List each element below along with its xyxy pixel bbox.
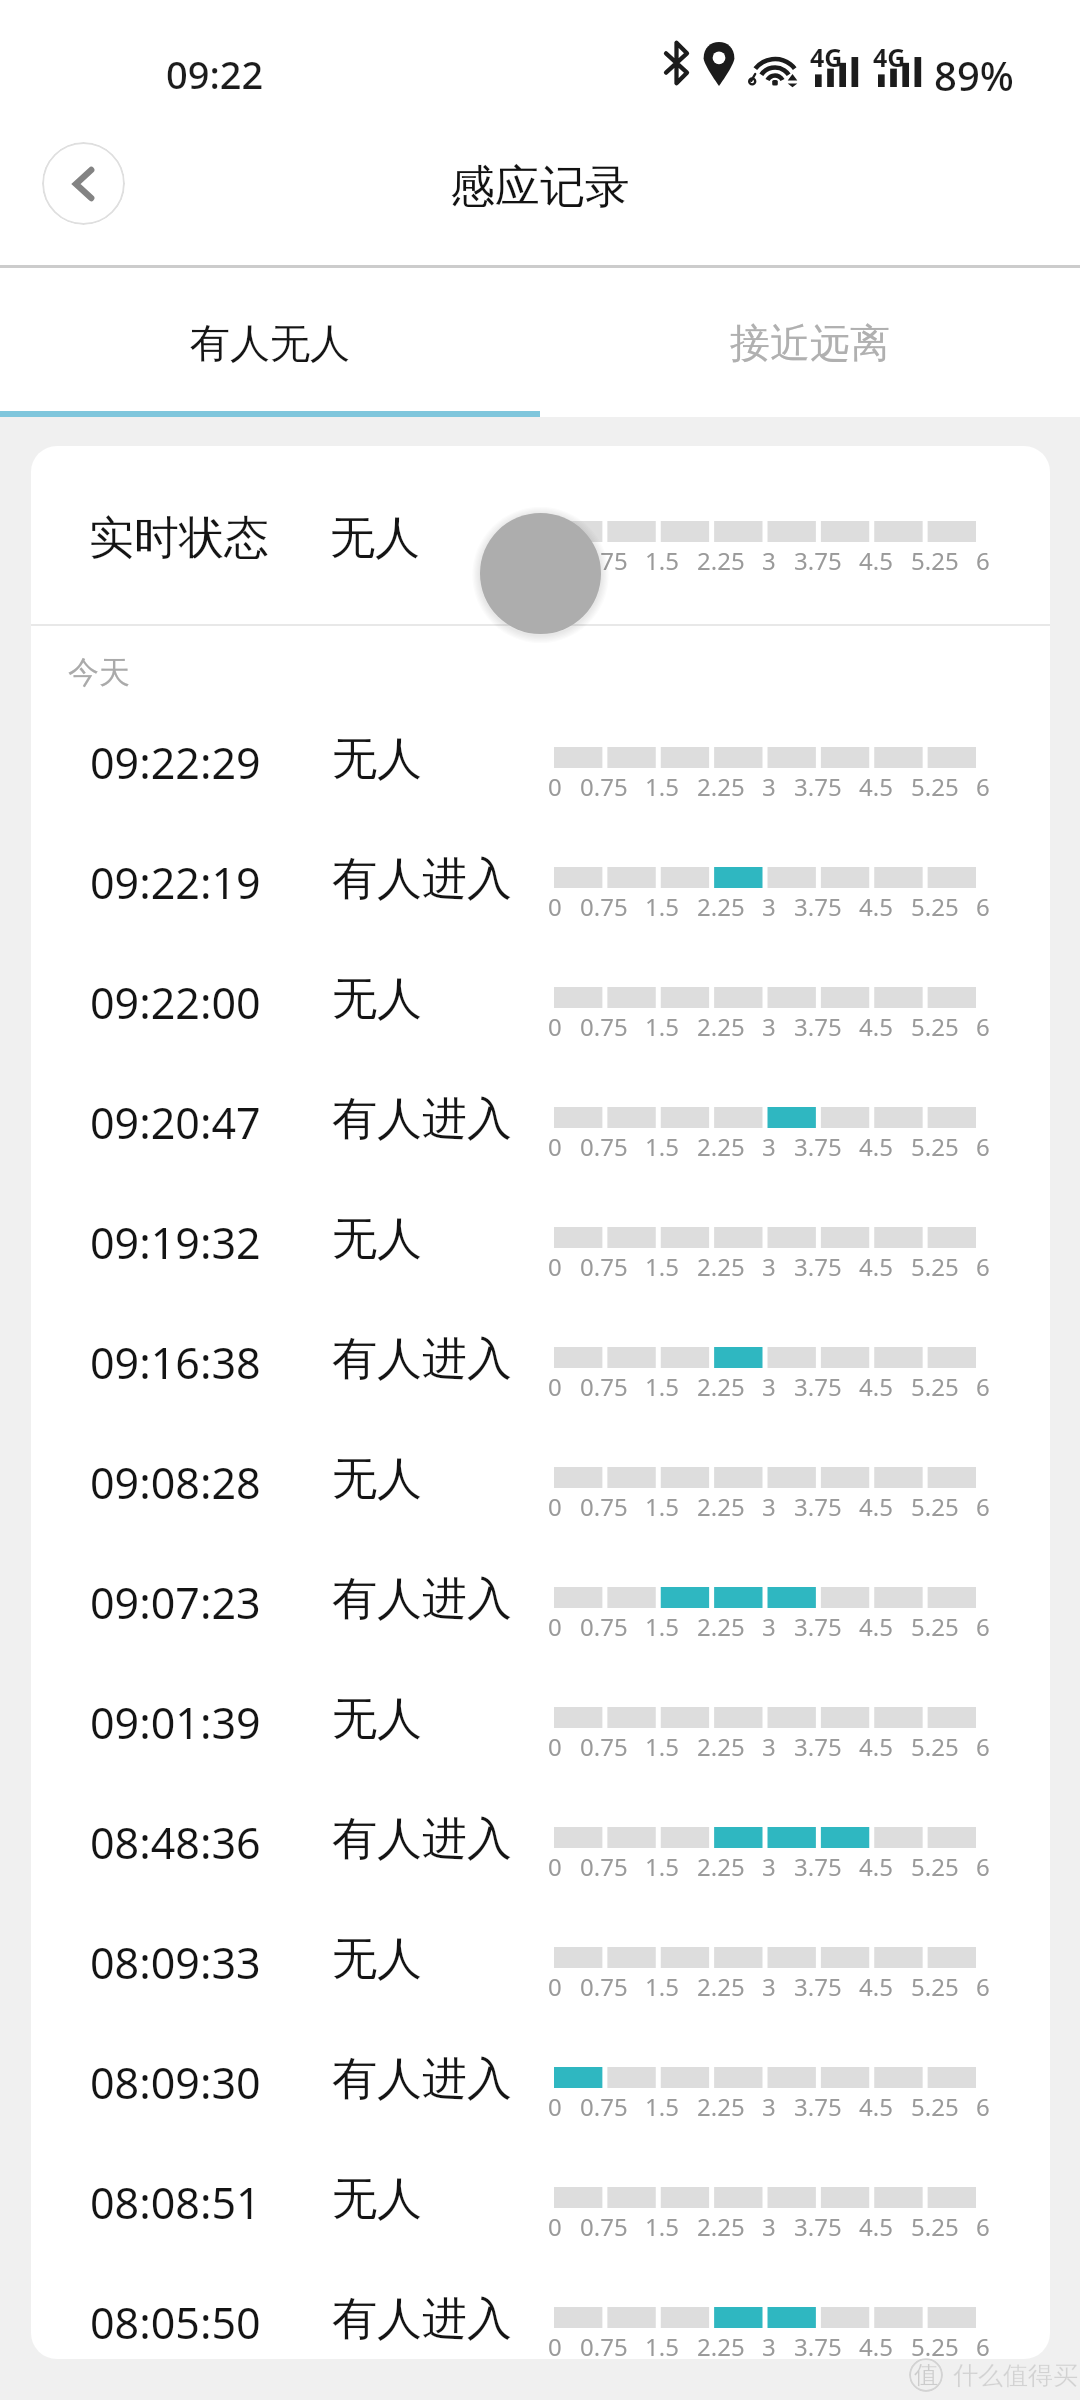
staticText: 2.25 — [697, 1250, 745, 1283]
staticText: 1.5 — [645, 1010, 679, 1043]
staticText: 3.75 — [794, 1130, 842, 1163]
staticText: 08:05:50 — [90, 2293, 261, 2352]
staticText: 08:09:33 — [90, 1933, 261, 1992]
staticText: 6 — [976, 890, 990, 923]
staticText: 09:22:29 — [90, 733, 261, 792]
staticText: 2.25 — [697, 770, 745, 803]
button[interactable]: 08:09:30 — [31, 2022, 1050, 2142]
staticText: 2.25 — [697, 890, 745, 923]
staticText: 6 — [976, 1730, 990, 1763]
staticText: 3.75 — [794, 1010, 842, 1043]
staticText: 0.75 — [580, 770, 628, 803]
staticText: 89% — [934, 48, 1014, 102]
staticText: 3 — [762, 1850, 776, 1883]
staticText: 0.75 — [580, 544, 628, 577]
staticText: 2.25 — [697, 544, 745, 577]
button[interactable]: 08:08:51 — [31, 2142, 1050, 2262]
staticText: 3 — [762, 1970, 776, 2003]
staticText: 无人 — [332, 1211, 422, 1268]
staticText: 1.5 — [645, 1130, 679, 1163]
staticText: 有人进入 — [332, 1331, 512, 1388]
staticText: 08:08:51 — [90, 2173, 261, 2232]
staticText: 1.5 — [645, 1370, 679, 1403]
staticText: 3 — [762, 2090, 776, 2123]
staticText: 什么值得买 — [953, 2360, 1078, 2391]
staticText: 无人 — [332, 971, 422, 1028]
staticText: 6 — [976, 2210, 990, 2243]
staticText: 6 — [976, 1490, 990, 1523]
staticText: 2.25 — [697, 1490, 745, 1523]
staticText: 08:09:30 — [90, 2053, 261, 2112]
button[interactable]: 08:09:33 — [31, 1902, 1050, 2022]
button[interactable]: 实时状态 — [31, 446, 1050, 624]
staticText: 0 — [548, 2090, 562, 2123]
staticText: 5.25 — [911, 544, 959, 577]
button[interactable]: 09:22:19 — [31, 822, 1050, 942]
staticText: 有人进入 — [332, 2291, 512, 2348]
button[interactable]: 09:22:29 — [31, 702, 1050, 822]
staticText: 1.5 — [645, 1250, 679, 1283]
staticText: 5.25 — [911, 1730, 959, 1763]
button[interactable]: 08:05:50 — [31, 2262, 1050, 2359]
staticText: 09:22:00 — [90, 973, 261, 1032]
staticText: 有人进入 — [332, 1571, 512, 1628]
staticText: 3.75 — [794, 544, 842, 577]
staticText: 3 — [762, 2210, 776, 2243]
button[interactable]: 09:07:23 — [31, 1542, 1050, 1662]
button[interactable]: 接近远离 — [540, 268, 1080, 417]
staticText: 08:48:36 — [90, 1813, 261, 1872]
staticText: 5.25 — [911, 1970, 959, 2003]
staticText: 0.75 — [580, 2090, 628, 2123]
staticText: 4.5 — [859, 1130, 893, 1163]
button[interactable]: Back — [42, 142, 125, 225]
staticText: 2.25 — [697, 1850, 745, 1883]
staticText: 09:07:23 — [90, 1573, 261, 1632]
staticText: 09:19:32 — [90, 1213, 261, 1272]
staticText: 3.75 — [794, 890, 842, 923]
button[interactable]: 09:22:00 — [31, 942, 1050, 1062]
staticText: 4.5 — [859, 1490, 893, 1523]
staticText: 1.5 — [645, 2090, 679, 2123]
staticText: 3 — [762, 1490, 776, 1523]
staticText: 3.75 — [794, 1730, 842, 1763]
staticText: 0.75 — [580, 1250, 628, 1283]
staticText: 2.25 — [697, 1610, 745, 1643]
button[interactable]: 08:48:36 — [31, 1782, 1050, 1902]
staticText: 09:22 — [166, 48, 264, 100]
staticText: 1.5 — [645, 1490, 679, 1523]
button[interactable]: 09:19:32 — [31, 1182, 1050, 1302]
staticText: 6 — [976, 1370, 990, 1403]
staticText: 2.25 — [697, 1730, 745, 1763]
staticText: 09:22:19 — [90, 853, 261, 912]
staticText: 5.25 — [911, 1370, 959, 1403]
staticText: 4.5 — [859, 2090, 893, 2123]
staticText: 3 — [762, 1370, 776, 1403]
staticText: 3 — [762, 544, 776, 577]
button[interactable]: 有人无人 — [0, 268, 540, 417]
staticText: 0.75 — [580, 1130, 628, 1163]
button[interactable]: 09:08:28 — [31, 1422, 1050, 1542]
staticText: 0 — [548, 1490, 562, 1523]
button[interactable]: 09:16:38 — [31, 1302, 1050, 1422]
staticText: 0.75 — [580, 1730, 628, 1763]
staticText: 6 — [976, 544, 990, 577]
staticText: 感应记录 — [450, 159, 630, 216]
staticText: 3.75 — [794, 1250, 842, 1283]
staticText: 3 — [762, 1250, 776, 1283]
button[interactable]: 09:20:47 — [31, 1062, 1050, 1182]
staticText: 5.25 — [911, 1250, 959, 1283]
staticText: 4.5 — [859, 1370, 893, 1403]
staticText: 5.25 — [911, 770, 959, 803]
staticText: 0 — [548, 1010, 562, 1043]
staticText: 4G — [873, 40, 906, 74]
staticText: 接近远离 — [730, 318, 890, 368]
staticText: 3.75 — [794, 2210, 842, 2243]
staticText: 无人 — [332, 731, 422, 788]
button[interactable]: 09:01:39 — [31, 1662, 1050, 1782]
staticText: 3.75 — [794, 2090, 842, 2123]
staticText: 0.75 — [580, 1370, 628, 1403]
staticText: 4.5 — [859, 1970, 893, 2003]
staticText: 3 — [762, 1010, 776, 1043]
staticText: 4.5 — [859, 1010, 893, 1043]
